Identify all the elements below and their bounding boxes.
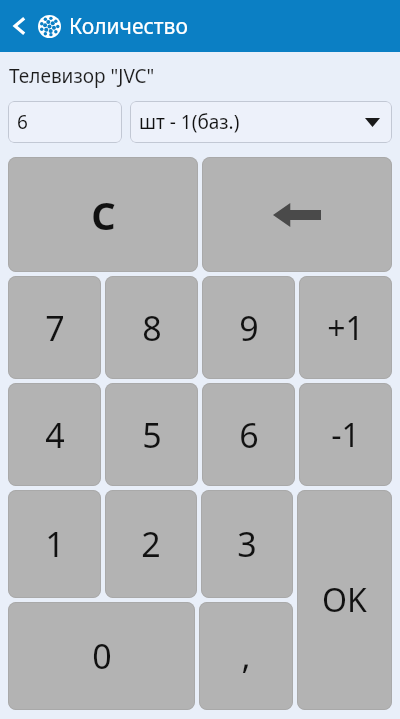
staticText: 1	[45, 521, 65, 567]
button[interactable]: 4	[8, 383, 101, 486]
button[interactable]: 5	[105, 383, 198, 486]
staticText: шт - 1(баз.)	[139, 109, 240, 135]
staticText: 0	[92, 633, 112, 679]
button[interactable]: C	[8, 157, 198, 272]
button[interactable]: 3	[201, 490, 293, 598]
button[interactable]: 6	[202, 383, 295, 486]
button[interactable]: 9	[202, 276, 295, 379]
staticText: 9	[239, 305, 259, 351]
staticText: +1	[327, 306, 364, 350]
staticText: C	[91, 189, 116, 241]
button[interactable]: Backspace	[202, 157, 392, 272]
staticText: OK	[322, 578, 367, 622]
button[interactable]: 8	[105, 276, 198, 379]
button[interactable]: -1	[299, 383, 392, 486]
staticText: 8	[142, 305, 162, 351]
staticText: 7	[45, 305, 65, 351]
button[interactable]: шт - 1(баз.)	[130, 101, 392, 143]
button[interactable]: OK	[297, 490, 392, 710]
button[interactable]: 0	[8, 602, 195, 710]
button[interactable]: 6	[8, 101, 122, 143]
staticText: 6	[239, 412, 259, 458]
button[interactable]: Back	[0, 0, 38, 52]
button[interactable]: ,	[199, 602, 293, 710]
button[interactable]: +1	[299, 276, 392, 379]
staticText: 6	[17, 109, 28, 135]
button[interactable]: 2	[105, 490, 197, 598]
staticText: Количество	[69, 12, 188, 41]
button[interactable]: 1	[8, 490, 101, 598]
staticText: 3	[237, 521, 257, 567]
staticText: -1	[331, 413, 360, 457]
staticText: ,	[241, 633, 251, 679]
staticText: 5	[142, 412, 162, 458]
staticText: 2	[141, 521, 161, 567]
button[interactable]: 7	[8, 276, 101, 379]
staticText: 4	[45, 412, 65, 458]
staticText: Телевизор "JVC"	[9, 63, 155, 89]
